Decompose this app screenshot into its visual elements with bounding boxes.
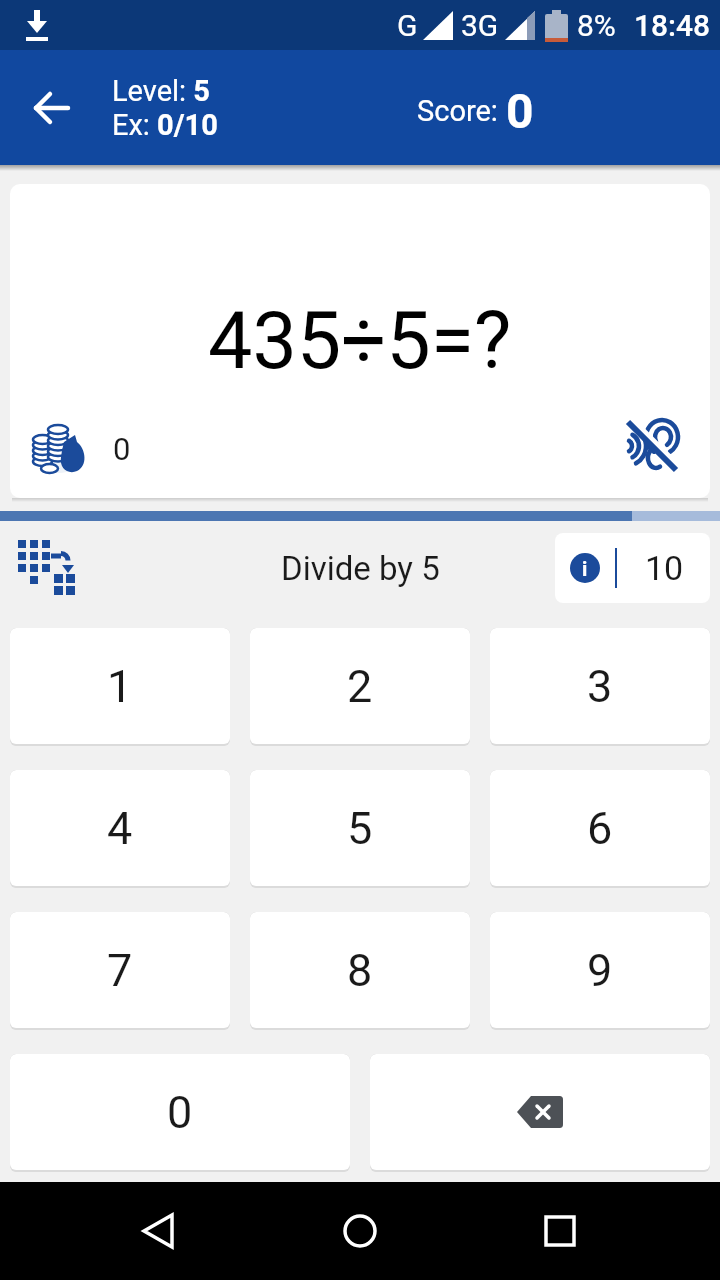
staticText: 10 [645, 548, 684, 588]
button[interactable] [30, 86, 74, 130]
staticText: i [582, 557, 588, 580]
staticText: 7 [107, 944, 133, 997]
staticText: 2 [347, 660, 373, 713]
staticText: 9 [587, 944, 613, 997]
staticText: 8 [347, 944, 373, 997]
button[interactable]: 4 [10, 770, 230, 888]
button[interactable]: 9 [490, 912, 710, 1030]
staticText: 1 [107, 660, 133, 713]
button[interactable]: 5 [250, 770, 470, 888]
button[interactable] [127, 1198, 193, 1264]
button[interactable]: 6 [490, 770, 710, 888]
button[interactable] [14, 536, 78, 600]
staticText: 5 [347, 802, 373, 855]
staticText: 435÷5=? [208, 295, 512, 388]
staticText: 0 [113, 431, 131, 467]
button[interactable] [527, 1198, 593, 1264]
button[interactable] [622, 416, 682, 476]
staticText: Score: [417, 94, 506, 128]
staticText: 6 [587, 802, 613, 855]
staticText: 0 [506, 83, 534, 139]
button[interactable]: 8 [250, 912, 470, 1030]
button[interactable] [370, 1054, 710, 1172]
staticText: 8% [577, 8, 616, 43]
staticText: 3G [461, 8, 499, 43]
button[interactable]: 1 [10, 628, 230, 746]
staticText: Divide by 5 [281, 549, 440, 588]
staticText: Ex: 0/10 [112, 108, 218, 142]
button[interactable]: 7 [10, 912, 230, 1030]
staticText: 18:48 [634, 8, 711, 43]
button[interactable]: 0 [32, 425, 131, 473]
button[interactable]: 3 [490, 628, 710, 746]
staticText: 0 [167, 1086, 193, 1139]
button[interactable] [327, 1198, 393, 1264]
staticText: Level: 5 [112, 74, 210, 108]
button[interactable]: i [555, 533, 710, 603]
button[interactable]: 2 [250, 628, 470, 746]
staticText: G [397, 8, 418, 43]
staticText: 3 [587, 660, 613, 713]
staticText: 4 [107, 802, 133, 855]
button[interactable]: 0 [10, 1054, 350, 1172]
